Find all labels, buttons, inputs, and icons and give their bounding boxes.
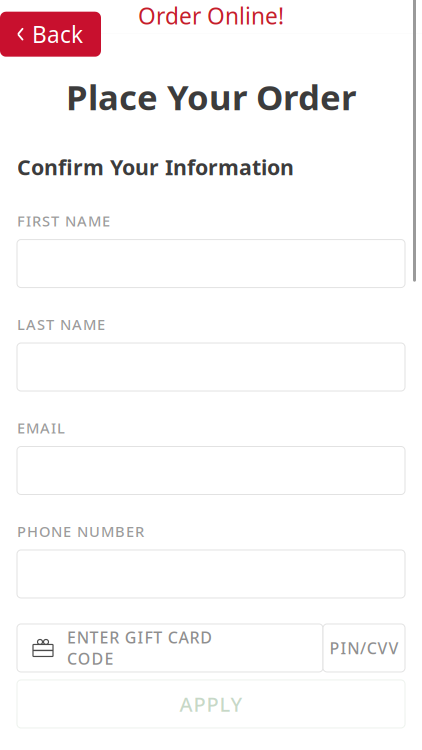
- staticText: Log In: [230, 0, 283, 11]
- staticText: EMAIL: [17, 418, 65, 437]
- staticText: FIRST NAME: [17, 211, 110, 231]
- staticText: APPLY: [179, 691, 242, 717]
- staticText: PHONE NUMBER: [17, 521, 144, 541]
- button[interactable]: Order Online!: [128, 0, 294, 35]
- button[interactable]: PIN/CVV: [323, 624, 405, 672]
- button[interactable]: ENTER GIFT CARD CODE: [17, 624, 323, 672]
- staticText: Place Your Order: [66, 74, 356, 120]
- staticText: Back: [32, 19, 83, 49]
- staticText: Order Online!: [138, 1, 284, 31]
- staticText: Confirm Your Information: [17, 153, 294, 181]
- staticText: ENTER GIFT CARD CODE: [67, 627, 212, 669]
- button[interactable]: APPLY: [17, 680, 405, 728]
- staticText: PIN/CVV: [330, 637, 398, 658]
- button[interactable]: Back: [0, 12, 101, 57]
- staticText: LAST NAME: [17, 314, 105, 334]
